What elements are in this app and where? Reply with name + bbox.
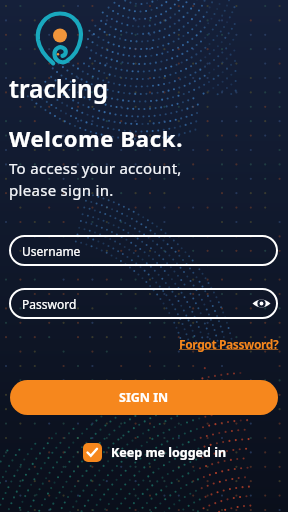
staticText: SIGN IN [119,389,169,406]
staticText: Forgot Password? [179,336,279,352]
staticText: To access your account, please sign in. [9,158,182,201]
staticText: Username [22,243,81,259]
staticText: Password [22,296,77,312]
staticText: Welcome Back. [9,123,184,153]
staticText: tracking [9,72,109,105]
staticText: Keep me logged in [111,444,227,461]
